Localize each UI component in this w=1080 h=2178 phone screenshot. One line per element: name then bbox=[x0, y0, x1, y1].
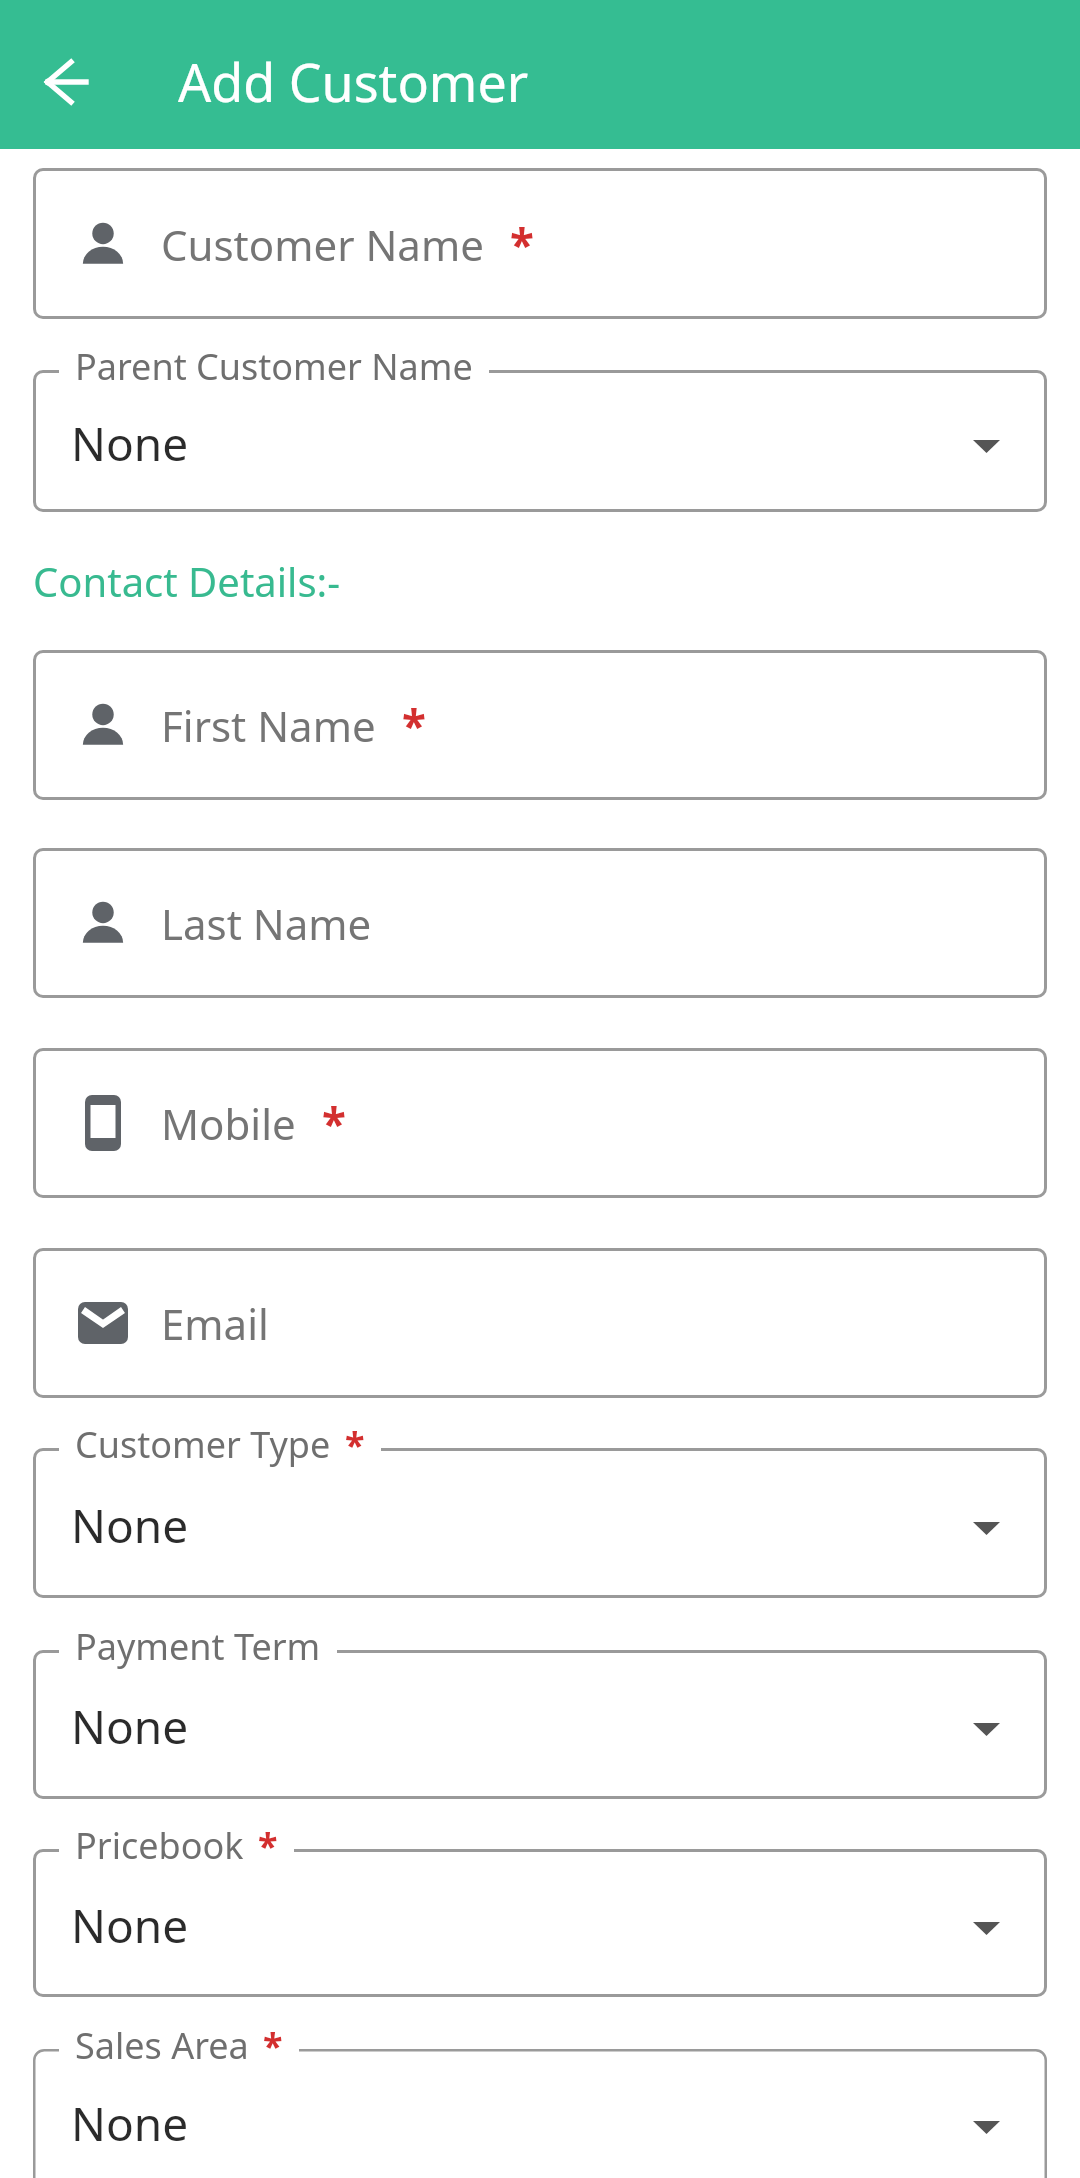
staticText: Pricebook bbox=[75, 1821, 244, 1870]
staticText: Email bbox=[161, 1295, 269, 1352]
staticText: None bbox=[71, 2092, 189, 2155]
staticText: * bbox=[345, 1420, 365, 1469]
button[interactable]: None bbox=[33, 1827, 1047, 1997]
staticText: Sales Area bbox=[75, 2021, 249, 2070]
staticText: Payment Term bbox=[75, 1622, 321, 1671]
staticText: None bbox=[71, 1494, 189, 1557]
staticText: None bbox=[71, 1695, 189, 1758]
staticText: Customer Name bbox=[161, 216, 484, 273]
staticText: Add Customer bbox=[178, 46, 529, 117]
button[interactable]: None bbox=[33, 1426, 1047, 1598]
button[interactable]: None bbox=[33, 2027, 1047, 2178]
staticText: Mobile bbox=[161, 1095, 296, 1152]
staticText: * bbox=[510, 214, 534, 274]
staticText: * bbox=[402, 695, 426, 755]
staticText: * bbox=[263, 2021, 283, 2070]
staticText: Last Name bbox=[161, 895, 372, 952]
button[interactable]: Email bbox=[33, 1248, 1047, 1398]
button[interactable]: First Name bbox=[33, 650, 1047, 800]
staticText: None bbox=[71, 412, 189, 475]
staticText: First Name bbox=[161, 697, 376, 754]
button[interactable]: Last Name bbox=[33, 848, 1047, 998]
button[interactable]: Mobile bbox=[33, 1048, 1047, 1198]
staticText: Contact Details:- bbox=[33, 554, 341, 608]
button[interactable]: Customer Name bbox=[33, 168, 1047, 319]
staticText: * bbox=[322, 1093, 346, 1153]
staticText: * bbox=[258, 1821, 278, 1870]
button[interactable]: None bbox=[33, 348, 1047, 512]
button[interactable] bbox=[44, 59, 90, 105]
staticText: None bbox=[71, 1894, 189, 1957]
button[interactable]: None bbox=[33, 1628, 1047, 1799]
staticText: Parent Customer Name bbox=[75, 342, 473, 391]
staticText: Customer Type bbox=[75, 1420, 331, 1469]
